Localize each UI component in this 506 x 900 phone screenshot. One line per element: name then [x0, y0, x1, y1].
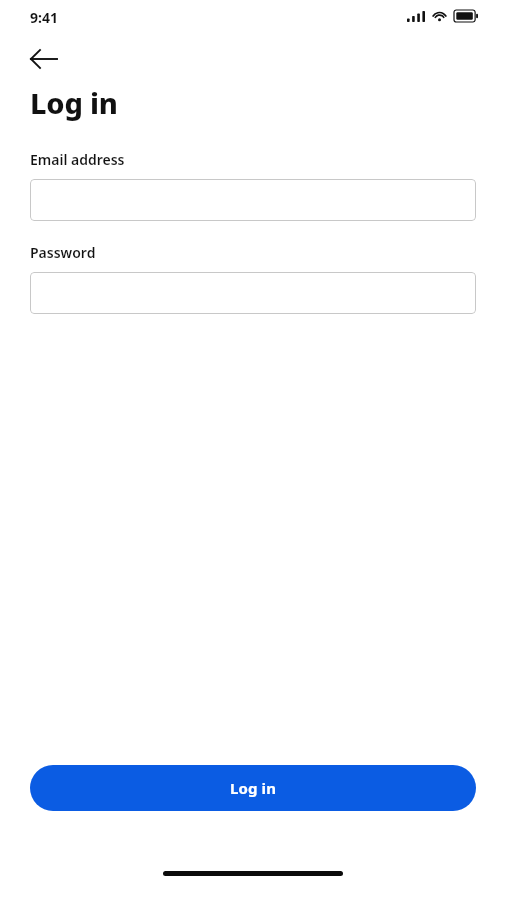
staticText: Password: [30, 243, 96, 262]
staticText: 9:41: [30, 8, 58, 27]
staticText: Email address: [30, 150, 125, 169]
button[interactable]: Back: [23, 38, 64, 79]
staticText: Log in: [30, 83, 118, 122]
staticText: Log in: [230, 778, 276, 798]
button[interactable]: Email address: [30, 179, 476, 221]
button[interactable]: Log in: [30, 765, 476, 811]
button[interactable]: Password: [30, 272, 476, 314]
